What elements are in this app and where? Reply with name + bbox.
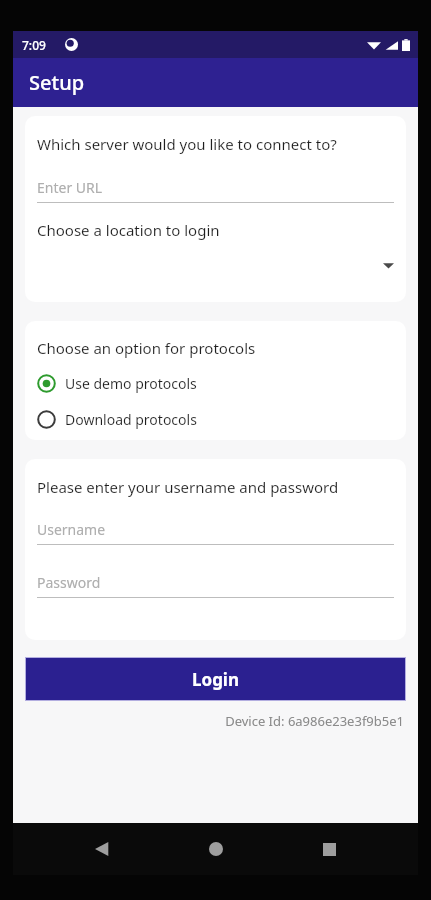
staticText: Choose a location to login — [37, 220, 220, 240]
staticText: Which server would you like to connect t… — [37, 134, 337, 154]
button[interactable]: Password — [37, 573, 394, 598]
button[interactable]: Username — [37, 520, 394, 545]
staticText: Enter URL — [37, 178, 103, 197]
staticText: Please enter your username and password — [37, 477, 339, 497]
staticText: Device Id: 6a986e23e3f9b5e1 — [13, 712, 404, 730]
button[interactable]: Home — [199, 832, 233, 866]
staticText: Setup — [29, 69, 85, 96]
staticText: Use demo protocols — [65, 374, 197, 393]
button[interactable]: Recents — [312, 832, 346, 866]
button[interactable]: Use demo protocols — [37, 368, 394, 398]
staticText: Username — [37, 520, 106, 539]
staticText: 7:09 — [22, 37, 46, 53]
staticText: Choose an option for protocols — [37, 338, 256, 358]
staticText: Download protocols — [65, 410, 197, 429]
button[interactable]: Download protocols — [37, 404, 394, 434]
staticText: Password — [37, 573, 101, 592]
button[interactable]: Login — [26, 658, 405, 700]
staticText: Login — [192, 668, 240, 691]
button[interactable]: Choose a location — [37, 240, 394, 290]
button[interactable]: Back — [85, 832, 119, 866]
button[interactable]: Enter URL — [37, 178, 394, 203]
